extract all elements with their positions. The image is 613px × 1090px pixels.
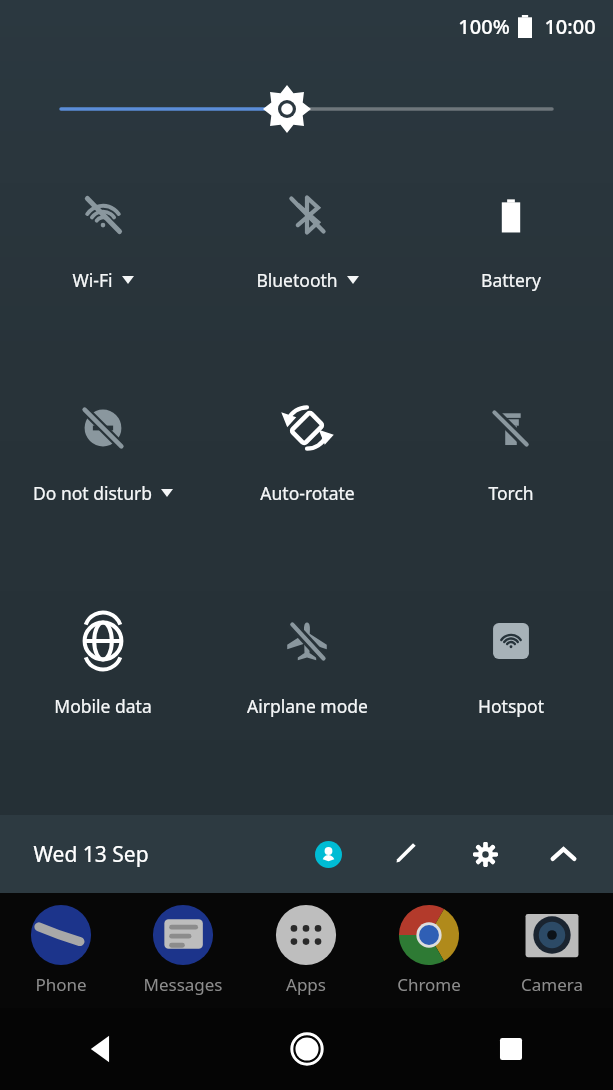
button[interactable]: Camera [490, 893, 613, 1008]
staticText: Airplane mode [247, 694, 368, 718]
button[interactable]: Back [0, 1008, 205, 1090]
button[interactable]: Account [306, 832, 350, 876]
button[interactable]: Wi-Fi [0, 150, 205, 363]
button[interactable]: Auto-rotate [205, 363, 409, 576]
button[interactable]: Collapse [541, 832, 585, 876]
staticText: 10:00 [544, 13, 596, 40]
button[interactable]: Hotspot [409, 576, 613, 789]
button[interactable]: Edit [384, 832, 428, 876]
staticText: Chrome [397, 973, 461, 996]
button[interactable]: Airplane mode [205, 576, 409, 789]
button[interactable]: Apps [244, 893, 367, 1008]
button[interactable]: Recents [409, 1008, 613, 1090]
button[interactable]: Do not disturb [0, 363, 205, 576]
button[interactable]: Bluetooth [205, 150, 409, 363]
staticText: Camera [521, 973, 583, 996]
staticText: Wed 13 Sep [33, 840, 149, 869]
button[interactable]: Phone [0, 893, 122, 1008]
button[interactable]: Battery [409, 150, 613, 363]
staticText: Do not disturb [33, 481, 152, 505]
button[interactable]: Settings [463, 832, 507, 876]
button[interactable]: Messages [122, 893, 244, 1008]
staticText: Battery [481, 268, 541, 292]
staticText: Auto-rotate [260, 481, 355, 505]
staticText: Wi-Fi [72, 268, 113, 292]
staticText: Messages [143, 973, 223, 996]
button[interactable]: Chrome [367, 893, 490, 1008]
button[interactable]: Mobile data [0, 576, 205, 789]
staticText: 100% [458, 13, 510, 40]
button[interactable]: Brightness [0, 78, 613, 140]
button[interactable]: Home [205, 1008, 409, 1090]
staticText: Bluetooth [256, 268, 338, 292]
staticText: Mobile data [54, 694, 152, 718]
staticText: Apps [286, 973, 326, 996]
staticText: Torch [488, 481, 534, 505]
button[interactable]: Torch [409, 363, 613, 576]
staticText: Phone [35, 973, 87, 996]
staticText: Hotspot [478, 694, 544, 718]
